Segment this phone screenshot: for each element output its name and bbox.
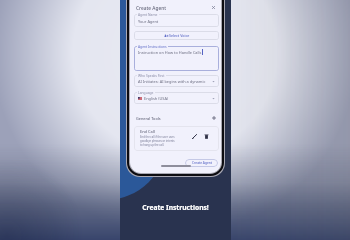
button[interactable] (134, 46, 219, 71)
staticText: End the call if the user uses goodbye ph… (140, 135, 176, 147)
button[interactable]: Add tool (210, 114, 217, 121)
staticText: AI Initiates: AI begins with a dynamic (138, 79, 206, 84)
button[interactable]: Create Agent (185, 159, 218, 167)
button[interactable]: Close (210, 4, 217, 11)
button[interactable]: Edit (190, 132, 198, 140)
staticText: Your Agent (138, 19, 159, 24)
staticText: Create Agent (136, 5, 167, 12)
staticText: Create Instructions! (142, 203, 209, 212)
staticText: English (USA) (144, 96, 169, 101)
button[interactable]: Select Voice (134, 31, 219, 40)
staticText: Who Speaks First (138, 73, 165, 77)
staticText: End Call (140, 129, 155, 134)
staticText: Select Voice (169, 33, 190, 38)
staticText: Instruction on How to Handle Calls (138, 50, 202, 55)
staticText: Create Agent (192, 161, 212, 165)
staticText: Agent Name (138, 12, 158, 16)
button[interactable]: Delete (202, 132, 210, 140)
staticText: Agent Instructions (138, 44, 167, 48)
button[interactable] (134, 92, 219, 104)
button[interactable] (134, 75, 219, 87)
staticText: General Tools (136, 116, 161, 121)
button[interactable] (134, 14, 219, 27)
staticText: Language (138, 90, 154, 94)
button[interactable]: End Call (134, 126, 219, 151)
